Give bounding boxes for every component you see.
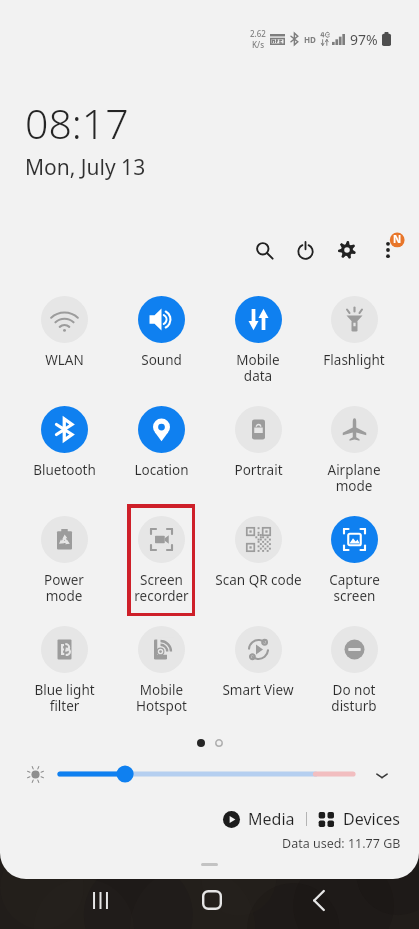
staticText: 97% (350, 30, 378, 49)
button[interactable]: Back (295, 876, 343, 924)
staticText: Portrait (234, 461, 283, 479)
staticText: Screen recorder (134, 571, 189, 605)
button[interactable]: Bluetooth (18, 406, 110, 479)
staticText: Flashlight (323, 351, 385, 369)
staticText: Bluetooth (33, 461, 96, 479)
staticText: Media (248, 808, 295, 830)
button[interactable]: WLAN (18, 296, 110, 369)
button[interactable]: Portrait (212, 406, 304, 479)
button[interactable]: Screen recorder (115, 516, 207, 605)
button[interactable]: Blue light filter (18, 626, 110, 715)
staticText: Capture screen (329, 571, 380, 605)
staticText: N (393, 232, 402, 246)
staticText: Mobile data (236, 351, 280, 385)
button[interactable]: Airplane mode (308, 406, 400, 495)
staticText: Airplane mode (327, 461, 381, 495)
staticText: Location (134, 461, 189, 479)
staticText: Scan QR code (215, 571, 302, 589)
staticText: 2.62 (250, 28, 266, 39)
staticText: Sound (141, 351, 182, 369)
staticText: Smart View (222, 681, 294, 699)
button[interactable]: Do not disturb (308, 626, 400, 715)
staticText: HD (304, 34, 316, 45)
button[interactable]: Home (188, 876, 236, 924)
button[interactable]: Smart View (212, 626, 304, 699)
button[interactable]: Power mode (18, 516, 110, 605)
staticText: Mobile Hotspot (136, 681, 187, 715)
staticText: Mon, July 13 (25, 153, 146, 182)
button[interactable]: Flashlight (308, 296, 400, 369)
staticText: Blue light filter (34, 681, 95, 715)
staticText: 08:17 (25, 95, 129, 151)
button[interactable]: Mobile Hotspot (115, 626, 207, 715)
button[interactable]: Power (285, 230, 325, 270)
button[interactable]: Settings (327, 230, 367, 270)
staticText: Do not disturb (331, 681, 377, 715)
button[interactable]: More options (368, 230, 408, 270)
button[interactable]: Mobile data (212, 296, 304, 385)
staticText: K/s (252, 39, 265, 50)
staticText: Devices (343, 808, 401, 830)
button[interactable]: Search (244, 230, 284, 270)
staticText: WLAN (45, 351, 84, 369)
button[interactable]: Sound (115, 296, 207, 369)
staticText: Power mode (44, 571, 84, 605)
button[interactable]: Recents (76, 876, 124, 924)
button[interactable]: Capture screen (308, 516, 400, 605)
button[interactable]: Location (115, 406, 207, 479)
button[interactable]: Media (218, 805, 300, 833)
button[interactable]: Brightness (51, 762, 362, 786)
button[interactable]: Devices (313, 805, 406, 833)
button[interactable]: Expand (368, 761, 396, 789)
staticText: Data used: 11.77 GB (282, 835, 401, 852)
button[interactable]: Scan QR code (212, 516, 304, 589)
